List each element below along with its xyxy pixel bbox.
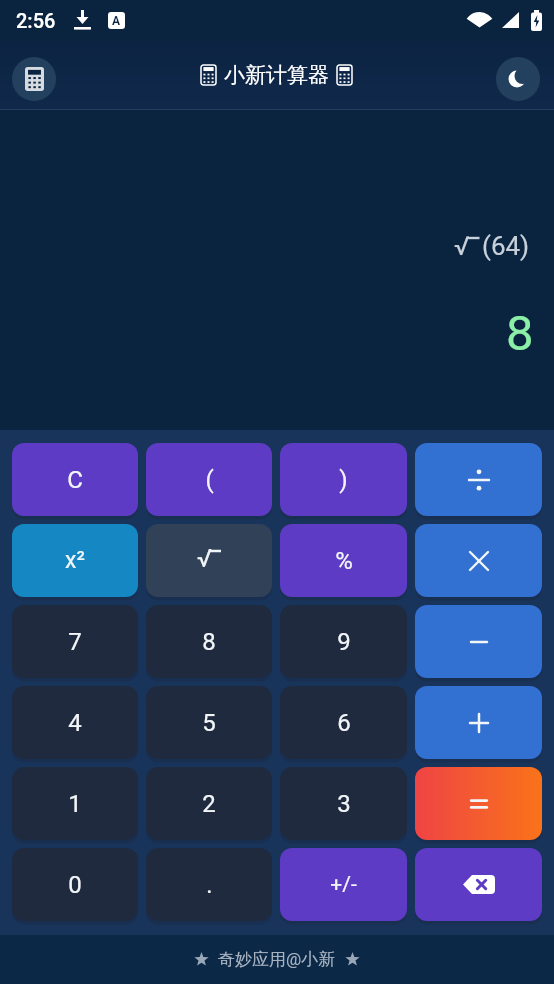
staticText: C [67,466,83,494]
button[interactable] [415,848,542,921]
staticText: % [335,547,353,575]
staticText: x² [65,547,85,574]
staticText: 9 [337,628,351,656]
button[interactable]: x² [12,524,138,597]
staticText: 1 [68,790,82,818]
staticText: . [206,871,213,899]
staticText: 6 [337,709,351,737]
staticText: A [112,14,121,28]
button[interactable]: 0 [12,848,138,921]
button[interactable]: 8 [146,605,272,678]
button[interactable]: ( [146,443,272,516]
button[interactable] [415,443,542,516]
staticText: ( [205,466,214,494]
button[interactable]: √ [146,524,272,597]
button[interactable] [496,57,540,101]
button[interactable]: C [12,443,138,516]
button[interactable]: 3 [280,767,407,840]
button[interactable]: . [146,848,272,921]
button[interactable]: +/- [280,848,407,921]
button[interactable] [415,524,542,597]
button[interactable]: % [280,524,407,597]
staticText: 小新计算器 [224,62,329,88]
button[interactable]: 9 [280,605,407,678]
staticText: 8 [506,305,534,362]
staticText: +/- [330,872,357,897]
staticText: ) [339,466,348,494]
button[interactable]: 4 [12,686,138,759]
button[interactable] [415,767,542,840]
staticText: 奇妙应用@小新 [218,949,336,970]
button[interactable] [415,605,542,678]
button[interactable]: 1 [12,767,138,840]
button[interactable]: 7 [12,605,138,678]
staticText: 3 [337,790,351,818]
staticText: √ [197,544,212,573]
staticText: 2:56 [16,9,56,32]
button[interactable] [415,686,542,759]
button[interactable]: 5 [146,686,272,759]
staticText: 2 [202,790,216,818]
staticText: √ [454,231,470,261]
staticText: 8 [202,628,216,656]
button[interactable]: 2 [146,767,272,840]
staticText: 7 [68,628,82,656]
button[interactable]: 6 [280,686,407,759]
button[interactable]: ) [280,443,407,516]
staticText: 4 [68,709,82,737]
button[interactable] [12,57,56,101]
staticText: 5 [202,709,216,737]
staticText: 0 [68,871,82,899]
staticText: (64) [482,231,530,261]
